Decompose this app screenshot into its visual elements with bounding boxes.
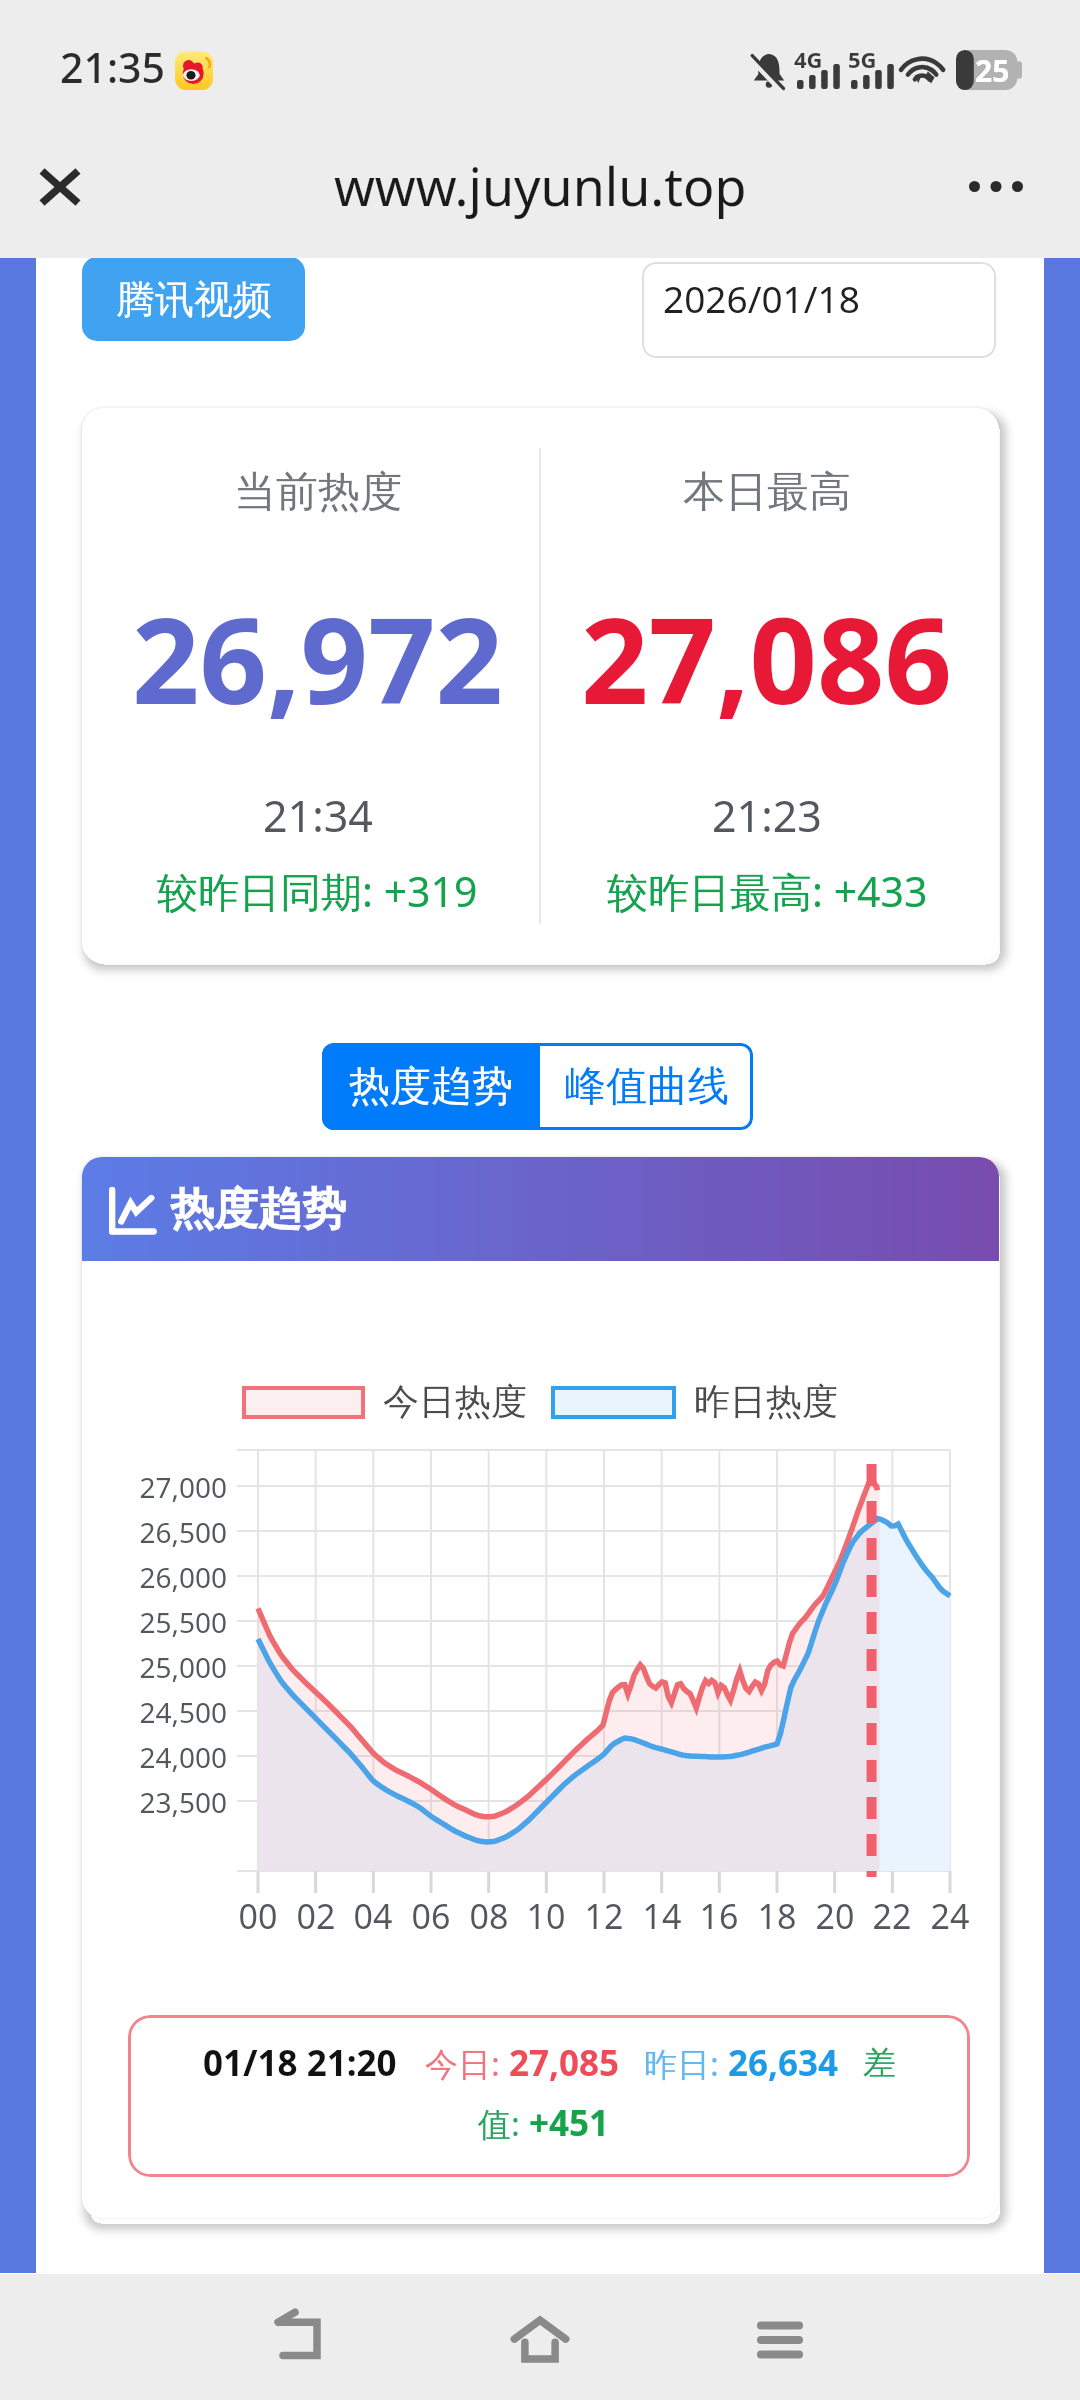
button[interactable]: Close [22,149,98,225]
staticText: 较昨日最高: +433 [607,863,928,919]
staticText: 27,085 [509,2039,620,2087]
staticText: 2026/01/18 [663,273,860,323]
staticText: 25,000 [82,1648,227,1686]
staticText: 21:34 [263,786,373,845]
staticText: 18 [737,1893,817,1939]
staticText: www.juyunlu.top [334,150,747,221]
staticText: 00 [218,1893,298,1939]
staticText: 23,500 [82,1783,227,1821]
staticText: 当前热度 [234,466,402,519]
staticText: 腾讯视频 [116,275,272,324]
staticText: 27,000 [82,1468,227,1506]
staticText: 昨日热度 [694,1379,838,1424]
staticText: 峰值曲线 [565,1061,729,1113]
staticText: 24 [910,1893,990,1939]
button[interactable]: Menu [720,2280,840,2400]
staticText: 20 [795,1893,875,1939]
staticText: 16 [679,1893,759,1939]
staticText: 25,500 [82,1603,227,1641]
staticText: 热度趋势 [170,1182,346,1237]
staticText: 04 [333,1893,413,1939]
staticText: 热度趋势 [349,1061,513,1113]
staticText: 22 [852,1893,932,1939]
staticText: 21:23 [712,786,822,845]
staticText: 24,500 [82,1693,227,1731]
staticText: 4G [794,44,823,74]
staticText: 01/18 21:20 [203,2039,397,2087]
staticText: 本日最高 [683,466,851,519]
button[interactable]: 腾讯视频 [82,257,305,341]
staticText: 27,086 [581,578,953,739]
staticText: 今日热度 [383,1379,527,1424]
staticText: 02 [276,1893,356,1939]
staticText: 今日: [425,2041,509,2086]
staticText: 5G [848,44,877,74]
staticText: 24,000 [82,1738,227,1776]
staticText: +451 [529,2099,610,2147]
staticText: 21:35 [60,39,165,95]
staticText: 昨日: [644,2041,728,2086]
button[interactable]: Back [240,2277,360,2397]
staticText: 差 [863,2042,896,2084]
button[interactable]: Home [480,2280,600,2400]
staticText: 12 [564,1893,644,1939]
button[interactable]: 热度趋势 [322,1043,540,1130]
button[interactable]: 峰值曲线 [540,1043,753,1130]
staticText: 06 [391,1893,471,1939]
staticText: 26,634 [728,2039,839,2087]
staticText: 26,500 [82,1513,227,1551]
button[interactable]: 2026/01/18 [642,262,996,358]
staticText: 25 [975,50,1010,90]
staticText: 较昨日同期: +319 [157,863,478,919]
staticText: 14 [622,1893,702,1939]
staticText: 10 [506,1893,586,1939]
staticText: 值: [478,2101,529,2146]
button[interactable]: More options [958,148,1034,224]
staticText: 26,972 [132,578,504,739]
staticText: 08 [449,1893,529,1939]
staticText: 26,000 [82,1558,227,1596]
